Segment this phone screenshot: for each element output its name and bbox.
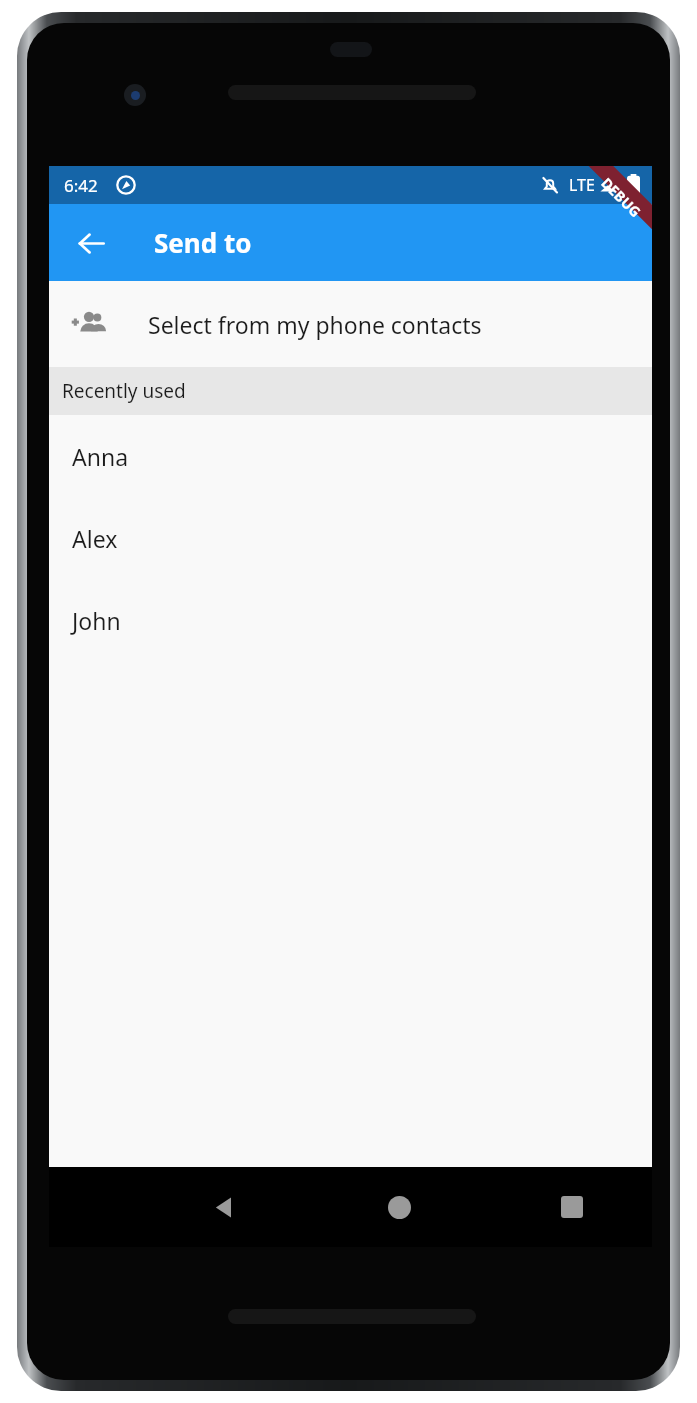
button[interactable]: Home [327, 1167, 471, 1247]
button[interactable]: John [49, 579, 652, 661]
staticText: Alex [72, 523, 118, 554]
button[interactable]: Recent apps [500, 1167, 644, 1247]
staticText: DEBUG [597, 173, 646, 222]
staticText: 6:42 [64, 174, 98, 197]
button[interactable]: Select from my phone contacts [49, 281, 652, 367]
staticText: Select from my phone contacts [148, 309, 482, 340]
staticText: Anna [72, 441, 129, 472]
button[interactable]: Alex [49, 497, 652, 579]
button[interactable]: Anna [49, 415, 652, 497]
button[interactable]: Back [152, 1167, 296, 1247]
staticText: LTE [569, 174, 595, 196]
staticText: Recently used [62, 378, 186, 404]
staticText: John [72, 605, 121, 636]
staticText: Send to [154, 225, 252, 260]
button[interactable]: Navigate up [67, 219, 115, 267]
